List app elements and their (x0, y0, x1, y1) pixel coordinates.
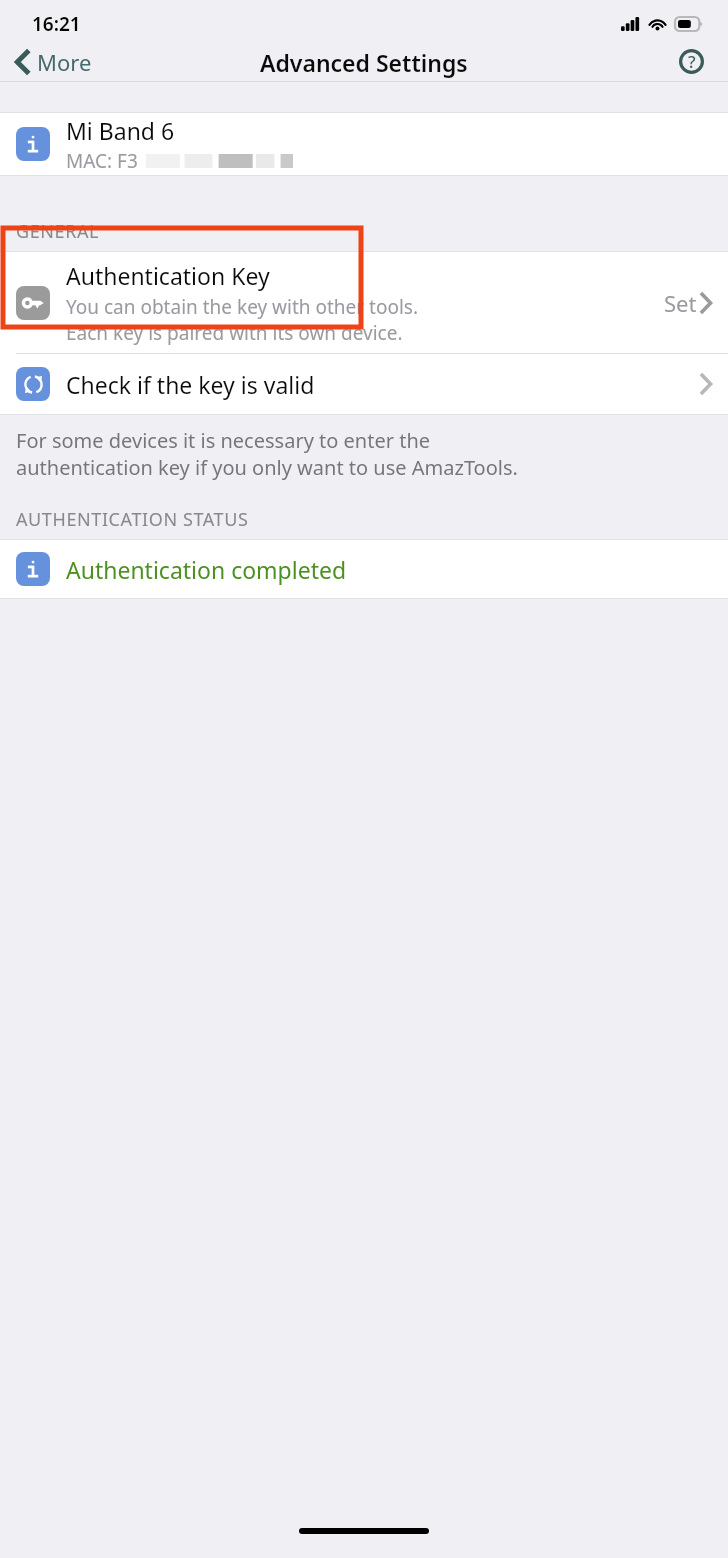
button[interactable]: Authentication Key (0, 251, 728, 354)
staticText: AUTHENTICATION STATUS (16, 507, 249, 532)
staticText: Each key is paired with its own device. (66, 320, 403, 346)
staticText: MAC: F3 (66, 148, 138, 174)
staticText: Mi Band 6 (66, 115, 175, 146)
button[interactable]: More (0, 41, 106, 82)
staticText: 16:21 (32, 11, 81, 37)
staticText: GENERAL (16, 219, 100, 244)
staticText: Authentication completed (66, 554, 347, 585)
button[interactable]: Help (669, 41, 714, 82)
staticText: Check if the key is valid (66, 369, 700, 400)
staticText: For some devices it is necessary to ente… (16, 427, 431, 454)
staticText: Authentication Key (66, 260, 270, 291)
staticText: ? (688, 50, 696, 73)
staticText: You can obtain the key with other tools. (66, 294, 419, 320)
button[interactable]: Check if the key is valid (0, 354, 728, 415)
staticText: Set (664, 288, 697, 318)
staticText: authentication key if you only want to u… (16, 454, 518, 481)
button[interactable]: Mi Band 6 (0, 112, 728, 176)
staticText: Advanced Settings (260, 47, 468, 78)
button[interactable]: Authentication completed (0, 539, 728, 599)
staticText: More (37, 47, 92, 76)
